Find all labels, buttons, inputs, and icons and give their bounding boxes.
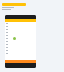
button[interactable] bbox=[13, 37, 16, 40]
button[interactable] bbox=[2, 3, 26, 6]
